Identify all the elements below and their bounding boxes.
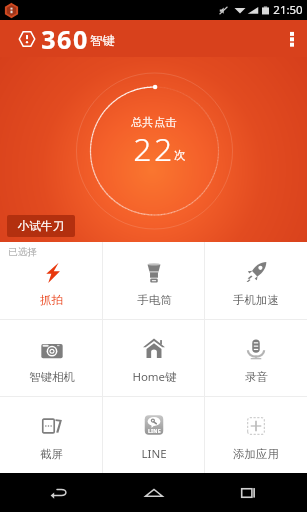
- staticText: 抓拍: [40, 293, 63, 307]
- staticText: LINE: [141, 446, 167, 462]
- staticText: 截屏: [40, 447, 63, 461]
- staticText: Home键: [132, 369, 177, 385]
- button[interactable]: Recents: [213, 473, 283, 512]
- button[interactable]: LINE: [103, 397, 205, 473]
- staticText: 小试牛刀: [17, 219, 65, 233]
- button[interactable]: 手电筒: [103, 242, 205, 319]
- staticText: 添加应用: [233, 447, 279, 461]
- staticText: 智键相机: [29, 370, 75, 384]
- staticText: 已选择: [8, 246, 37, 258]
- staticText: 手机加速: [233, 293, 279, 307]
- staticText: 手电筒: [137, 293, 172, 307]
- button[interactable]: 小试牛刀: [7, 215, 75, 237]
- button[interactable]: More options: [277, 20, 307, 57]
- button[interactable]: 添加应用: [205, 397, 307, 473]
- staticText: 录音: [245, 370, 268, 384]
- staticText: 智键: [90, 33, 115, 49]
- staticText: LINE: [148, 427, 161, 434]
- staticText: 次: [174, 148, 186, 162]
- button[interactable]: 截屏: [0, 397, 103, 473]
- button[interactable]: Home: [119, 473, 189, 512]
- button[interactable]: 抓拍: [0, 242, 103, 319]
- staticText: 21:50: [273, 2, 303, 18]
- button[interactable]: 智键相机: [0, 320, 103, 396]
- staticText: 360: [41, 22, 89, 56]
- button[interactable]: Back: [24, 473, 94, 512]
- staticText: 22: [133, 127, 175, 171]
- button[interactable]: 录音: [205, 320, 307, 396]
- button[interactable]: Home键: [103, 320, 205, 396]
- staticText: 总共点击: [131, 115, 177, 129]
- button[interactable]: 手机加速: [205, 242, 307, 319]
